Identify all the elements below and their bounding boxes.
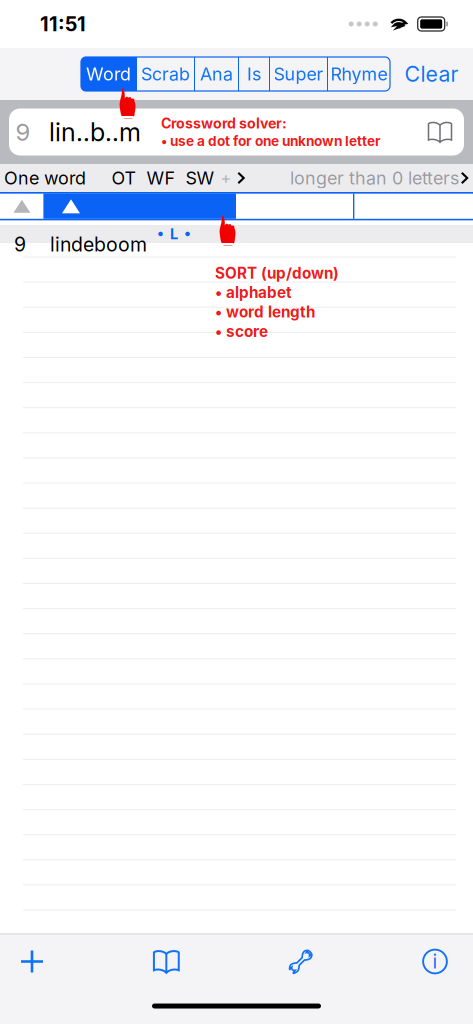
staticText: lindeboom xyxy=(50,233,147,256)
button[interactable]: Super xyxy=(270,57,327,91)
staticText: Ana xyxy=(200,63,233,85)
staticText: • use a dot for one unknown letter xyxy=(161,133,381,149)
staticText: • L • xyxy=(157,225,191,243)
button[interactable]: Sort column four xyxy=(355,194,473,219)
staticText: Rhyme xyxy=(330,63,387,85)
staticText: Clear xyxy=(404,61,458,87)
button[interactable]: Scrab xyxy=(137,57,194,91)
staticText: 11:51 xyxy=(40,12,86,36)
staticText: • word length xyxy=(215,303,315,321)
staticText: Crossword solver: xyxy=(161,115,287,132)
button[interactable]: Add xyxy=(0,934,64,988)
button[interactable]: Ana xyxy=(195,57,238,91)
button[interactable]: Rhyme xyxy=(328,57,390,91)
staticText: One word xyxy=(4,167,86,189)
button[interactable]: Settings xyxy=(269,934,333,988)
button[interactable]: Dictionary xyxy=(416,106,464,158)
staticText: OT WF SW xyxy=(111,167,214,189)
button[interactable]: Clear xyxy=(390,54,473,94)
staticText: Scrab xyxy=(141,63,190,85)
staticText: Super xyxy=(273,63,323,85)
button[interactable]: Sort ascending xyxy=(0,194,43,219)
staticText: • score xyxy=(215,322,268,341)
button[interactable]: One word xyxy=(0,164,94,192)
button[interactable]: Word xyxy=(81,57,136,91)
staticText: SORT (up/down) xyxy=(215,264,339,282)
staticText: longer than 0 letters xyxy=(290,167,459,189)
button[interactable]: Sort by word length xyxy=(45,194,236,219)
staticText: lin..b..m xyxy=(49,117,141,147)
button[interactable]: OT WF SW xyxy=(111,164,244,192)
staticText: i xyxy=(432,950,437,973)
staticText: 9 xyxy=(14,233,26,256)
button[interactable]: Sort by score xyxy=(236,194,353,219)
button[interactable]: Dictionary xyxy=(134,934,198,988)
staticText: • alphabet xyxy=(215,283,292,302)
staticText: + xyxy=(220,168,231,188)
button[interactable]: Is xyxy=(239,57,269,91)
button[interactable]: 9 xyxy=(0,232,473,256)
button[interactable]: Info xyxy=(403,934,467,988)
button[interactable]: longer than 0 letters xyxy=(290,164,473,192)
staticText: 9 xyxy=(15,117,30,146)
staticText: Word xyxy=(86,63,131,85)
staticText: Is xyxy=(247,63,261,85)
